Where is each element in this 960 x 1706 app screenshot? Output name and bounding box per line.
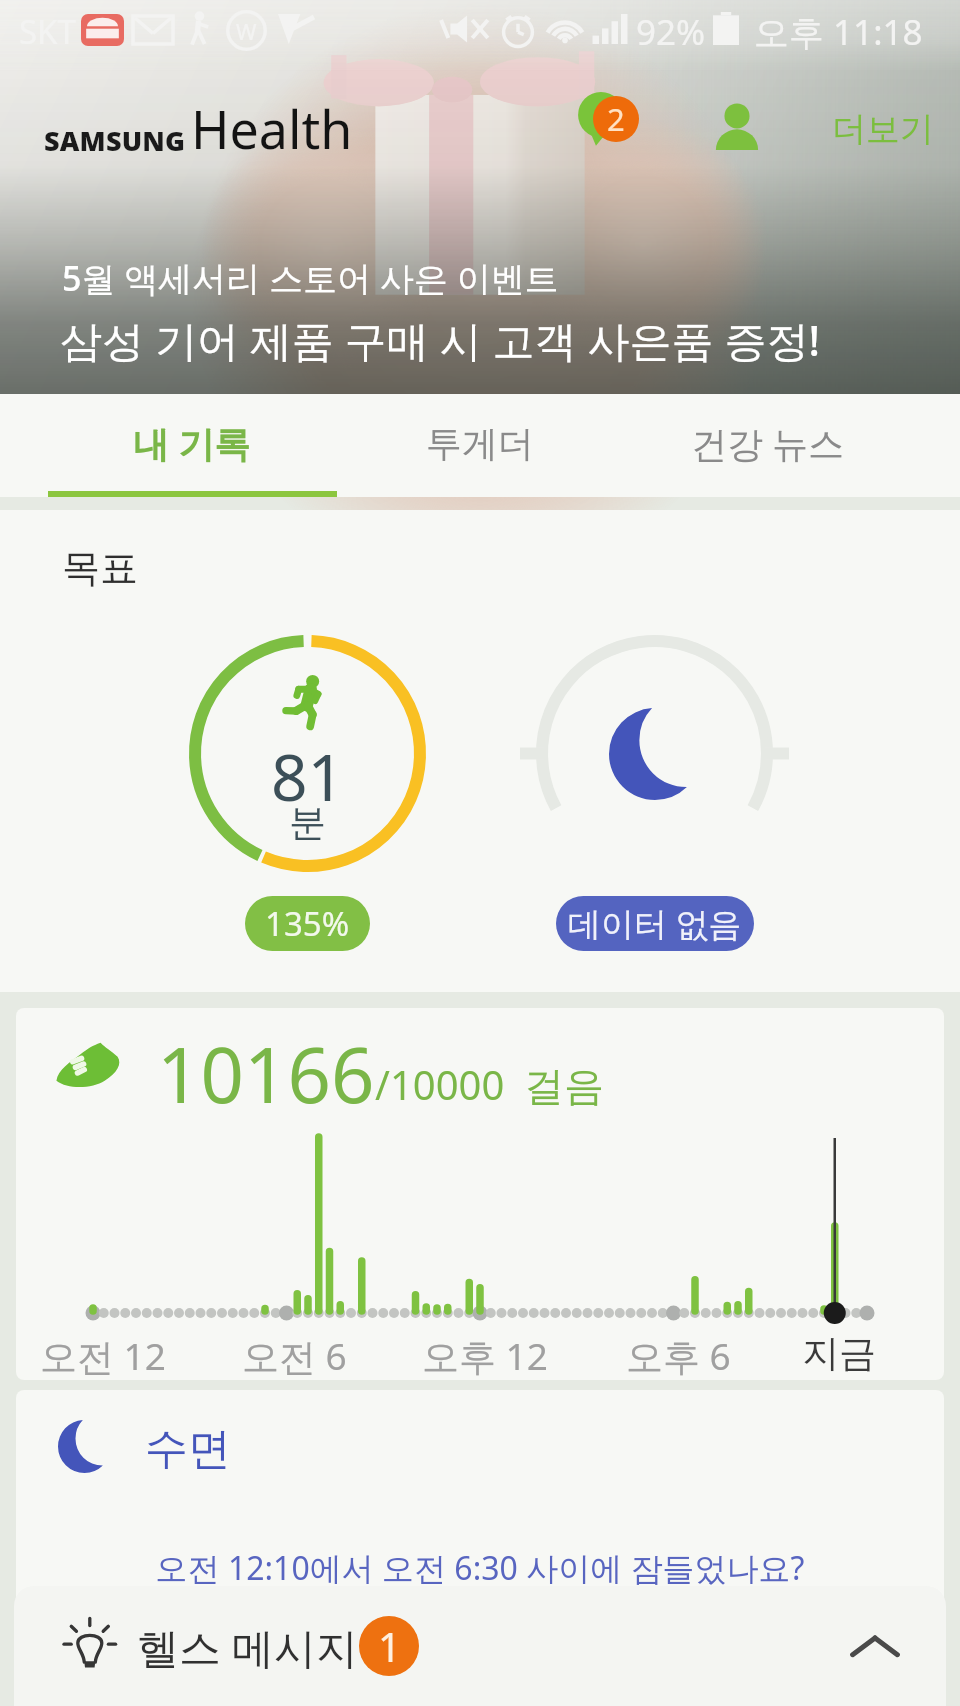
staticText: 1: [378, 1619, 401, 1673]
staticText: /10000: [375, 1057, 505, 1111]
staticText: 내 기록: [133, 419, 251, 468]
button[interactable]: 135%: [245, 896, 370, 951]
staticText: Health: [191, 93, 353, 164]
staticText: 지금: [802, 1330, 876, 1377]
staticText: SAMSUNG: [44, 122, 186, 159]
staticText: 분: [289, 799, 326, 846]
staticText: 오전 12:10에서 오전 6:30 사이에 잠들었나요?: [16, 1546, 944, 1590]
staticText: 오후 6: [626, 1330, 731, 1380]
button[interactable]: 더보기: [815, 94, 960, 165]
staticText: SKT: [19, 9, 76, 54]
other: Expand health messages: [847, 1620, 903, 1676]
button[interactable]: Profile: [697, 87, 777, 167]
staticText: 오후 11:18: [754, 8, 923, 56]
staticText: 2: [607, 98, 625, 140]
button[interactable]: 건강 뉴스: [624, 394, 912, 497]
staticText: 수면: [145, 1422, 231, 1476]
button[interactable]: 헬스 메시지: [14, 1586, 946, 1706]
button[interactable]: 10166: [16, 1008, 944, 1380]
staticText: 헬스 메시지: [137, 1618, 358, 1675]
staticText: 92%: [636, 8, 706, 56]
staticText: 데이터 없음: [568, 901, 742, 946]
button[interactable]: Messages: [566, 76, 658, 168]
staticText: 건강 뉴스: [691, 419, 845, 468]
staticText: 5월 액세서리 스토어 사은 이벤트: [62, 255, 559, 301]
staticText: 오전 6: [242, 1330, 347, 1380]
staticText: 오전 12: [40, 1330, 166, 1380]
staticText: 오후 12: [422, 1330, 548, 1380]
staticText: 10166: [157, 1022, 375, 1126]
staticText: 더보기: [832, 108, 934, 151]
button[interactable]: 투게더: [336, 394, 624, 497]
staticText: W: [236, 16, 257, 46]
staticText: 걸음: [524, 1061, 604, 1111]
button[interactable]: 내 기록: [48, 394, 336, 497]
staticText: 삼성 기어 제품 구매 시 고객 사은품 증정!: [60, 311, 820, 368]
button[interactable]: 데이터 없음: [556, 896, 754, 951]
button[interactable]: 수면: [16, 1390, 944, 1706]
button[interactable]: 81: [189, 635, 426, 951]
staticText: 135%: [265, 901, 350, 946]
staticText: 투게더: [426, 421, 534, 466]
staticText: 81: [271, 733, 345, 820]
staticText: 목표: [62, 544, 138, 592]
button[interactable]: 데이터 없음: [536, 635, 773, 951]
